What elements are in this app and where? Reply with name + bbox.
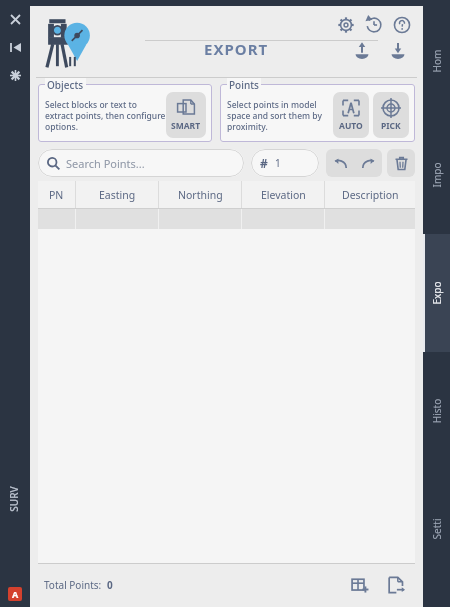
button[interactable]: Help [391,14,413,36]
button[interactable]: Undo [326,149,354,177]
staticText: Elevation [261,188,306,202]
staticText: AUTO [339,120,363,132]
staticText: Import [429,161,443,188]
staticText: Select points in model space and sort th… [227,99,333,132]
button[interactable]: Export [423,234,450,352]
button[interactable]: Settings [423,470,450,588]
button[interactable]: Export file [383,572,409,598]
button[interactable]: PICK [373,92,409,138]
staticText: A [12,588,19,600]
button[interactable]: SMART [166,92,206,138]
staticText: Total Points: [44,578,102,592]
staticText: Export [429,279,443,306]
staticText: Objects [47,78,84,92]
staticText: # [260,155,268,171]
staticText: PN [49,188,64,202]
button[interactable]: Home [423,6,450,116]
staticText: Settings [429,515,443,542]
button[interactable]: Delete [387,149,415,177]
button[interactable]: Search Points... [38,149,244,177]
staticText: Description [342,188,399,202]
button[interactable]: AutoCAD [8,587,22,601]
button[interactable]: Settings [335,14,357,36]
staticText: SMART [171,120,201,132]
button[interactable]: Redo [354,149,382,177]
staticText: 1 [275,156,281,170]
button[interactable]: Upload [351,40,373,62]
button[interactable]: Pin [6,66,24,84]
button[interactable]: Collapse [6,38,24,56]
button[interactable]: Import [423,116,450,234]
button[interactable]: Add rows [347,572,373,598]
staticText: PICK [381,120,401,132]
button[interactable]: History [423,352,450,470]
staticText: EXPORT [204,39,269,59]
staticText: Select blocks or text to extract points,… [45,99,166,132]
button[interactable]: History [363,14,385,36]
staticText: Points [229,78,259,92]
staticText: Home [429,47,443,74]
button[interactable]: # [251,149,319,177]
staticText: Search Points... [66,156,145,171]
button[interactable]: Download [387,40,409,62]
button[interactable]: Close [6,10,24,28]
staticText: Easting [99,188,136,202]
staticText: History [429,397,443,424]
button[interactable]: AUTO [333,92,369,138]
staticText: SURVEY POINT MANAGER [7,484,23,514]
staticText: Northing [178,188,223,202]
staticText: 0 [107,578,113,592]
